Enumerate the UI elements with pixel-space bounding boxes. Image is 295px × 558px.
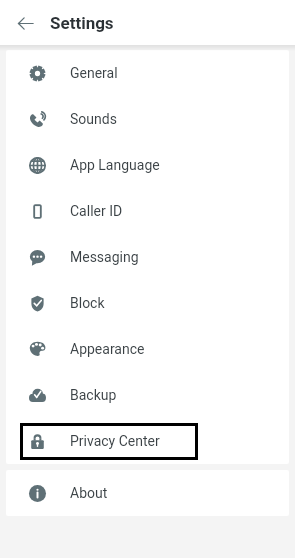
staticText: App Language (70, 157, 160, 173)
staticText: About (70, 485, 108, 501)
staticText: Backup (70, 387, 117, 403)
button[interactable]: Privacy Center (6, 418, 289, 464)
button[interactable]: Back (11, 9, 39, 37)
staticText: Caller ID (70, 203, 123, 219)
staticText: Privacy Center (70, 433, 160, 449)
button[interactable]: Messaging (6, 234, 289, 280)
button[interactable]: App Language (6, 142, 289, 188)
staticText: General (70, 65, 118, 81)
button[interactable]: General (6, 50, 289, 96)
button[interactable]: Caller ID (6, 188, 289, 234)
button[interactable]: Backup (6, 372, 289, 418)
button[interactable]: Sounds (6, 96, 289, 142)
staticText: Appearance (70, 341, 145, 357)
staticText: Messaging (70, 249, 139, 265)
staticText: Block (70, 295, 105, 311)
staticText: Settings (50, 13, 114, 33)
button[interactable]: About (6, 470, 289, 516)
button[interactable]: Appearance (6, 326, 289, 372)
staticText: Sounds (70, 111, 117, 127)
button[interactable]: Block (6, 280, 289, 326)
